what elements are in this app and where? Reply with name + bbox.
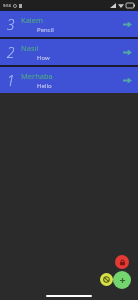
staticText: 2 bbox=[3, 43, 18, 62]
staticText: 1 bbox=[3, 71, 18, 90]
button[interactable]: 2 bbox=[0, 39, 138, 65]
button[interactable]: Lock bbox=[115, 255, 129, 269]
other: Open Kalem bbox=[123, 21, 132, 28]
staticText: Hello bbox=[37, 82, 123, 90]
staticText: Kalem bbox=[21, 15, 44, 25]
button[interactable]: 3 bbox=[0, 11, 138, 37]
other: Open Merhaba bbox=[123, 77, 132, 84]
button[interactable]: Mute bbox=[100, 273, 113, 286]
staticText: 9:56 bbox=[3, 3, 11, 8]
staticText: Pencil bbox=[37, 26, 123, 34]
button[interactable]: Add bbox=[113, 271, 131, 289]
staticText: 3 bbox=[3, 15, 18, 34]
button[interactable]: 1 bbox=[0, 67, 138, 93]
staticText: How bbox=[37, 54, 123, 62]
staticText: Nasıl bbox=[21, 43, 39, 53]
staticText: Merhaba bbox=[21, 71, 53, 81]
other: Open Nasıl bbox=[123, 49, 132, 56]
